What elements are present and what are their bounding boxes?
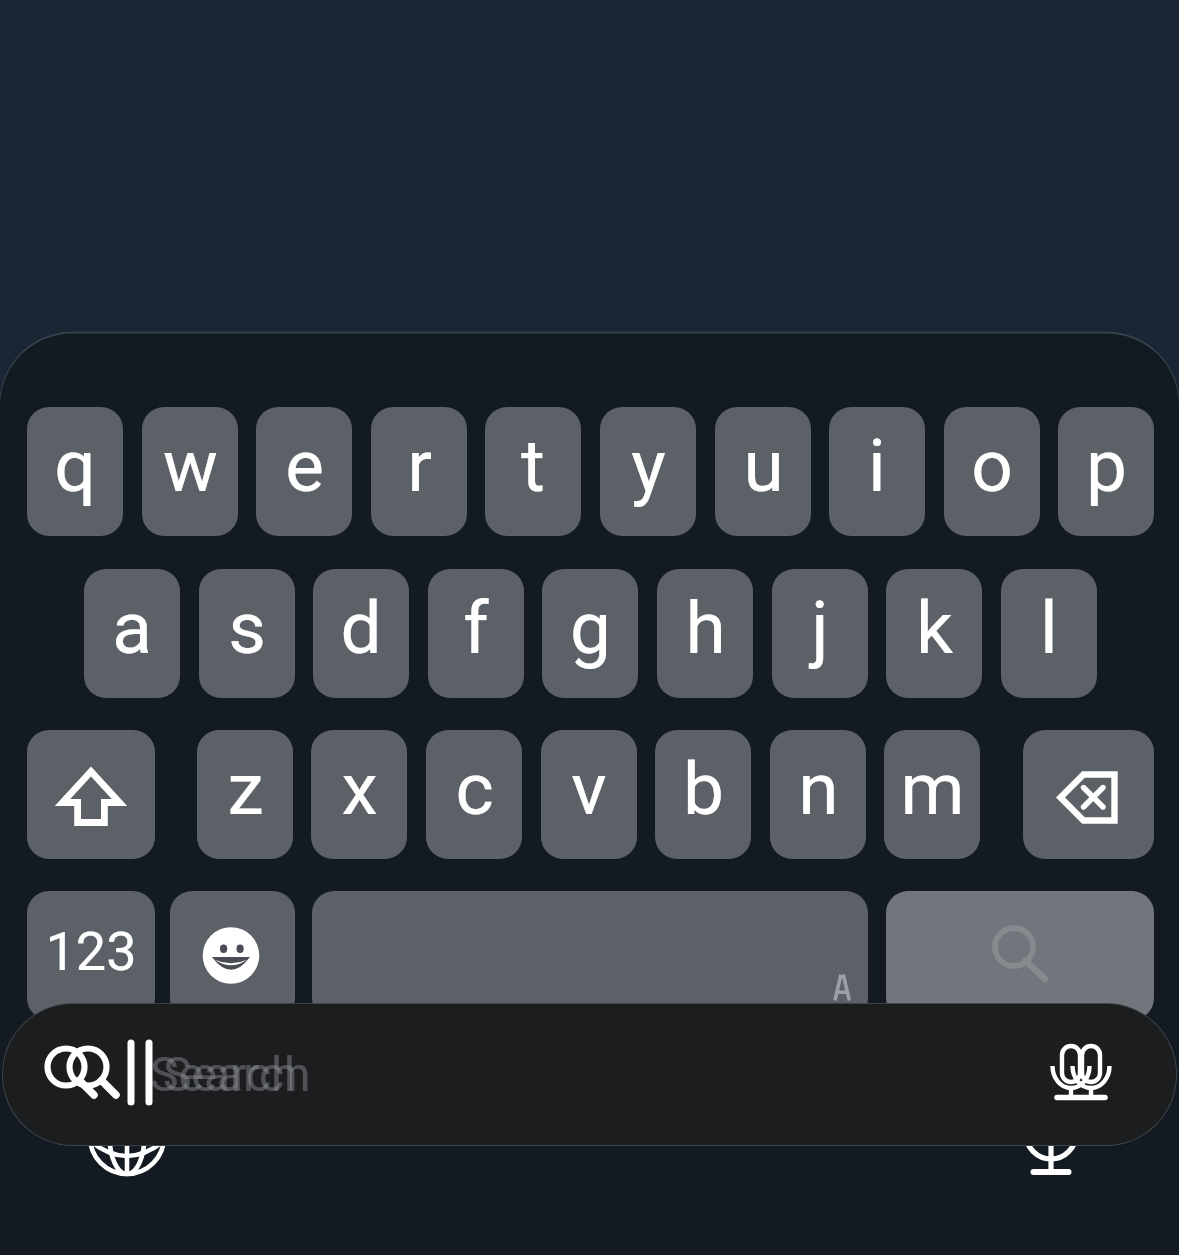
button[interactable]: Change language (77, 1087, 177, 1187)
button[interactable]: z (197, 730, 293, 859)
button[interactable]: Emoji (170, 891, 295, 1020)
button[interactable]: v (541, 730, 637, 859)
staticText: q (54, 423, 96, 509)
staticText: w (163, 423, 218, 509)
staticText: u (743, 423, 784, 509)
staticText: z (227, 746, 264, 832)
staticText: n (798, 746, 839, 832)
staticText: s (228, 585, 266, 671)
button[interactable]: Search (886, 891, 1154, 1020)
button[interactable]: x (311, 730, 407, 859)
staticText: g (570, 585, 611, 671)
staticText: y (631, 423, 666, 509)
staticText: a (112, 585, 152, 671)
button[interactable]: Search (3, 1004, 1176, 1145)
button[interactable]: Shift (27, 730, 155, 859)
button[interactable]: n (770, 730, 866, 859)
button[interactable]: f (428, 569, 524, 698)
staticText: p (1086, 423, 1127, 509)
button[interactable]: r (371, 407, 467, 536)
staticText: i (868, 423, 886, 509)
button[interactable]: b (655, 730, 751, 859)
staticText: v (571, 746, 607, 832)
button[interactable]: Backspace (1023, 730, 1154, 859)
staticText: r (407, 423, 432, 509)
button[interactable]: l (1001, 569, 1097, 698)
staticText: x (341, 746, 378, 832)
staticText: Search (163, 1046, 311, 1102)
staticText: m (900, 746, 965, 832)
button[interactable]: 123 (27, 891, 155, 1020)
button[interactable]: Space (312, 891, 868, 1020)
button[interactable]: i (829, 407, 925, 536)
button[interactable]: u (715, 407, 811, 536)
button[interactable]: t (485, 407, 581, 536)
button[interactable]: k (886, 569, 982, 698)
staticText: h (685, 585, 726, 671)
staticText: Search (150, 1046, 298, 1102)
staticText: l (1040, 585, 1058, 671)
staticText: 123 (45, 920, 137, 983)
button[interactable]: o (944, 407, 1040, 536)
button[interactable]: d (313, 569, 409, 698)
button[interactable]: j (772, 569, 868, 698)
button[interactable]: p (1058, 407, 1154, 536)
button[interactable]: e (256, 407, 352, 536)
button[interactable]: g (542, 569, 638, 698)
staticText: t (521, 423, 545, 509)
button[interactable]: w (142, 407, 238, 536)
button[interactable]: y (600, 407, 696, 536)
staticText: o (971, 423, 1013, 509)
staticText: b (683, 746, 724, 832)
staticText: d (340, 585, 382, 671)
button[interactable]: c (426, 730, 522, 859)
button[interactable]: s (199, 569, 295, 698)
button[interactable]: m (884, 730, 980, 859)
staticText: e (285, 423, 324, 509)
staticText: j (811, 585, 829, 671)
button[interactable]: Voice typing (1001, 1087, 1101, 1187)
button[interactable]: a (84, 569, 180, 698)
staticText: c (455, 746, 494, 832)
button[interactable]: h (657, 569, 753, 698)
staticText: f (463, 585, 489, 671)
button[interactable]: q (27, 407, 123, 536)
staticText: k (916, 585, 953, 671)
